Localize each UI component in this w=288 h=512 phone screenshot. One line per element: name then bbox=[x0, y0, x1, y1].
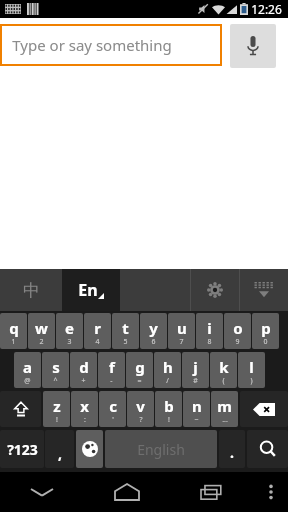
button[interactable]: Type or say something bbox=[2, 26, 220, 64]
button[interactable]: Backspace bbox=[240, 391, 288, 427]
button[interactable]: m bbox=[211, 391, 238, 427]
staticText: , bbox=[58, 444, 62, 463]
staticText: l bbox=[249, 357, 254, 377]
staticText: 3 bbox=[67, 337, 72, 347]
staticText: Type or say something bbox=[12, 35, 172, 55]
button[interactable]: u bbox=[168, 313, 195, 349]
staticText: ' bbox=[112, 415, 114, 425]
staticText: ) bbox=[250, 376, 253, 386]
staticText: r bbox=[94, 318, 101, 338]
button[interactable]: Change language bbox=[76, 430, 103, 468]
staticText: f bbox=[109, 357, 115, 377]
button[interactable]: g bbox=[126, 352, 153, 388]
staticText: 8 bbox=[207, 337, 212, 347]
button[interactable]: 中 bbox=[0, 269, 62, 311]
staticText: ~ bbox=[194, 415, 199, 425]
staticText: @ bbox=[24, 376, 31, 386]
staticText: z bbox=[53, 396, 61, 416]
staticText: # bbox=[193, 376, 198, 386]
button[interactable]: c bbox=[99, 391, 126, 427]
staticText: p bbox=[261, 318, 271, 338]
button[interactable]: o bbox=[224, 313, 251, 349]
staticText: 4 bbox=[95, 337, 100, 347]
button[interactable]: f bbox=[98, 352, 125, 388]
staticText: e bbox=[65, 318, 74, 338]
staticText: ... bbox=[222, 415, 228, 425]
staticText: 6 bbox=[151, 337, 156, 347]
staticText: h bbox=[163, 357, 173, 377]
staticText: s bbox=[52, 357, 60, 377]
button[interactable]: k bbox=[210, 352, 237, 388]
staticText: 12:26 bbox=[251, 1, 282, 17]
staticText: q bbox=[9, 318, 19, 338]
button[interactable]: d bbox=[70, 352, 97, 388]
staticText: = bbox=[137, 376, 142, 386]
button[interactable]: p bbox=[252, 313, 279, 349]
staticText: 0 bbox=[263, 337, 268, 347]
button[interactable]: Recent apps bbox=[169, 472, 254, 512]
button[interactable]: v bbox=[127, 391, 154, 427]
button[interactable]: r bbox=[84, 313, 111, 349]
button[interactable]: En bbox=[62, 269, 120, 311]
staticText: En bbox=[78, 279, 98, 301]
button[interactable]: Hide keyboard bbox=[240, 269, 288, 311]
button[interactable]: b bbox=[155, 391, 182, 427]
staticText: - bbox=[110, 376, 113, 386]
button[interactable]: English bbox=[105, 430, 217, 468]
staticText: / bbox=[166, 376, 169, 386]
staticText: ! bbox=[56, 415, 58, 425]
staticText: k bbox=[219, 357, 229, 377]
staticText: 7 bbox=[179, 337, 184, 347]
button[interactable]: x bbox=[71, 391, 98, 427]
staticText: ( bbox=[222, 376, 225, 386]
staticText: g bbox=[135, 357, 145, 377]
staticText: ? bbox=[139, 415, 143, 425]
button[interactable]: a bbox=[14, 352, 41, 388]
staticText: c bbox=[109, 396, 117, 416]
button[interactable]: Voice input bbox=[230, 24, 276, 68]
button[interactable]: Search bbox=[247, 430, 288, 468]
staticText: a bbox=[23, 357, 32, 377]
staticText: o bbox=[233, 318, 243, 338]
staticText: m bbox=[217, 396, 232, 416]
button[interactable]: t bbox=[112, 313, 139, 349]
staticText: w bbox=[35, 318, 48, 338]
button[interactable]: l bbox=[238, 352, 265, 388]
button[interactable]: s bbox=[42, 352, 69, 388]
staticText: 5 bbox=[123, 337, 128, 347]
staticText: ^ bbox=[53, 376, 58, 386]
button[interactable]: j bbox=[182, 352, 209, 388]
staticText: b bbox=[164, 396, 174, 416]
staticText: 中 bbox=[23, 280, 40, 301]
button[interactable]: , bbox=[45, 430, 74, 468]
staticText: t bbox=[122, 318, 129, 338]
button[interactable]: z bbox=[43, 391, 70, 427]
button[interactable]: y bbox=[140, 313, 167, 349]
staticText: v bbox=[136, 396, 145, 416]
button[interactable]: n bbox=[183, 391, 210, 427]
button[interactable]: i bbox=[196, 313, 223, 349]
button[interactable]: . bbox=[219, 430, 245, 468]
staticText: y bbox=[149, 318, 158, 338]
staticText: ! bbox=[168, 415, 170, 425]
staticText: . bbox=[230, 443, 234, 462]
button[interactable]: More options bbox=[254, 472, 288, 512]
button[interactable]: Home bbox=[84, 472, 169, 512]
button[interactable]: Shift bbox=[0, 391, 41, 427]
button[interactable]: Settings bbox=[191, 269, 239, 311]
staticText: + bbox=[81, 376, 86, 386]
button[interactable]: q bbox=[0, 313, 27, 349]
staticText: d bbox=[79, 357, 89, 377]
button[interactable]: w bbox=[28, 313, 55, 349]
button[interactable]: Hide keyboard bbox=[0, 472, 84, 512]
button[interactable]: ?123 bbox=[0, 430, 44, 468]
button[interactable]: h bbox=[154, 352, 181, 388]
staticText: u bbox=[177, 318, 187, 338]
staticText: j bbox=[193, 357, 198, 377]
button[interactable]: e bbox=[56, 313, 83, 349]
staticText: x bbox=[80, 396, 89, 416]
staticText: 2 bbox=[39, 337, 44, 347]
staticText: 9 bbox=[235, 337, 240, 347]
staticText: ?123 bbox=[7, 440, 38, 459]
staticText: English bbox=[137, 440, 185, 459]
